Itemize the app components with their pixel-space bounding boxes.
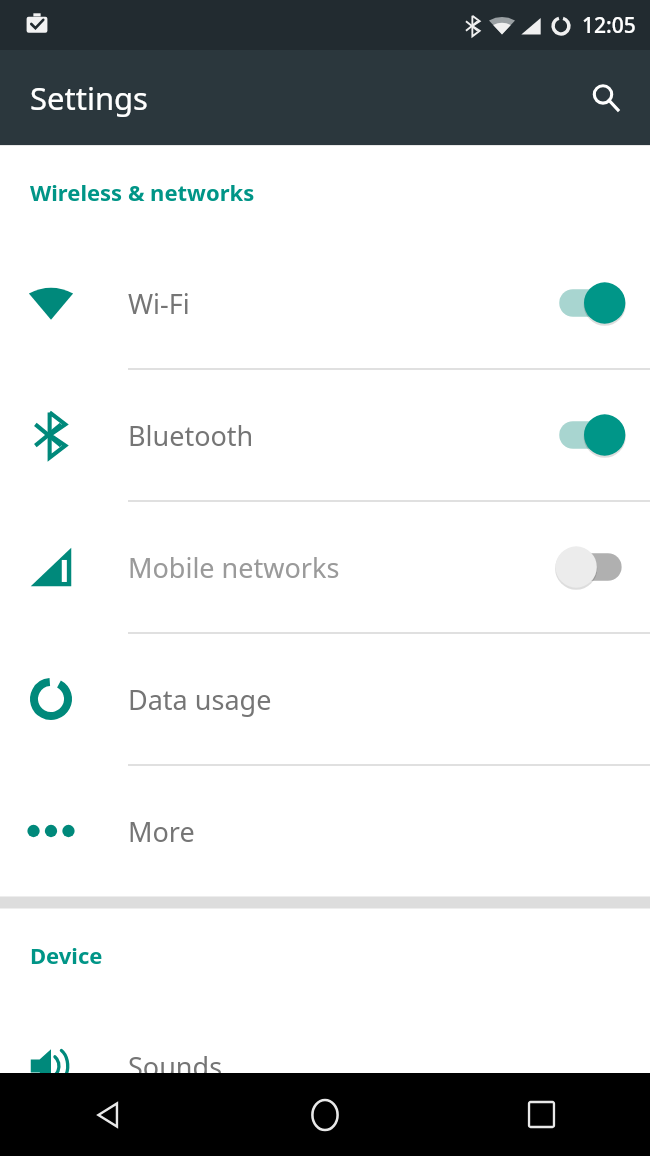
staticText: More xyxy=(128,813,630,850)
button[interactable]: Data usage xyxy=(0,634,650,766)
staticText: Settings xyxy=(30,77,148,119)
button[interactable]: Search xyxy=(580,72,632,124)
button[interactable]: Bluetooth xyxy=(0,370,650,502)
staticText: Data usage xyxy=(128,681,630,718)
staticText: Wi-Fi xyxy=(128,285,552,322)
staticText: Bluetooth xyxy=(128,417,552,454)
button[interactable]: More xyxy=(0,766,650,896)
staticText: 12:05 xyxy=(582,11,636,40)
staticText: Mobile networks xyxy=(128,549,552,586)
staticText: Device xyxy=(30,940,103,970)
button[interactable]: Mobile networks xyxy=(0,502,650,634)
button[interactable]: Sounds xyxy=(0,1001,650,1131)
button[interactable]: Recent apps xyxy=(433,1073,650,1156)
staticText: Sounds xyxy=(128,1048,630,1085)
button[interactable]: Wi-Fi xyxy=(0,238,650,370)
button[interactable]: Back xyxy=(0,1073,216,1156)
button[interactable]: Home xyxy=(216,1073,433,1156)
staticText: Wireless & networks xyxy=(30,177,255,207)
